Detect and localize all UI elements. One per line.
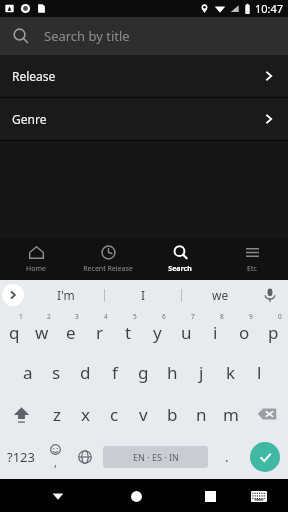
button[interactable]: Recents (197, 483, 223, 509)
staticText: 2 (47, 312, 51, 321)
button[interactable]: d (71, 351, 100, 393)
button[interactable]: 6 (143, 309, 172, 351)
button[interactable]: h (158, 351, 187, 393)
button[interactable]: x (71, 393, 100, 435)
staticText: 9 (249, 312, 253, 321)
staticText: r (96, 321, 104, 344)
staticText: ?123 (7, 448, 35, 466)
staticText: k (226, 361, 236, 384)
staticText: Release (12, 68, 262, 84)
staticText: z (53, 403, 61, 426)
staticText: p (268, 321, 279, 344)
staticText: 6 (162, 312, 166, 321)
staticText: f (112, 361, 118, 384)
staticText: j (199, 361, 204, 384)
button[interactable]: Search (0, 17, 288, 55)
staticText: Search by title (44, 27, 130, 45)
button[interactable]: Home (0, 238, 72, 280)
button[interactable]: Backspace (245, 393, 288, 435)
button[interactable]: 1 (0, 309, 28, 351)
button[interactable]: g (129, 351, 158, 393)
staticText: u (181, 321, 192, 344)
staticText: a (23, 361, 33, 384)
staticText: d (80, 361, 91, 384)
staticText: Home (26, 264, 46, 274)
staticText: m (223, 403, 239, 426)
staticText: 0 (278, 312, 282, 321)
button[interactable]: b (158, 393, 187, 435)
staticText: , (54, 455, 57, 470)
button[interactable]: j (187, 351, 216, 393)
staticText: I (141, 287, 146, 303)
staticText: o (239, 321, 250, 344)
staticText: w (35, 321, 49, 344)
staticText: 4 (104, 312, 108, 321)
button[interactable]: Emoji (41, 435, 70, 479)
staticText: x (81, 403, 90, 426)
button[interactable]: Home (123, 483, 149, 509)
button[interactable]: 4 (85, 309, 114, 351)
staticText: 10:47 (255, 1, 284, 16)
button[interactable]: I'm (28, 287, 104, 303)
button[interactable]: f (100, 351, 129, 393)
staticText: 3 (75, 312, 79, 321)
button[interactable]: k (216, 351, 245, 393)
staticText: e (66, 321, 76, 344)
staticText: . (225, 448, 229, 466)
button[interactable]: s (42, 351, 71, 393)
button[interactable]: . (212, 435, 241, 479)
staticText: i (213, 321, 218, 344)
button[interactable]: 9 (230, 309, 259, 351)
staticText: EN · ES · IN (133, 451, 179, 463)
button[interactable]: ?123 (0, 435, 41, 479)
staticText: v (139, 403, 148, 426)
button[interactable]: Back (45, 483, 71, 509)
button[interactable]: a (13, 351, 42, 393)
staticText: Genre (12, 111, 262, 127)
button[interactable]: More suggestions (2, 284, 24, 306)
staticText: I'm (57, 287, 75, 303)
staticText: Search (168, 264, 192, 274)
button[interactable]: 7 (172, 309, 201, 351)
button[interactable]: I (105, 287, 181, 303)
button[interactable]: v (129, 393, 158, 435)
button[interactable]: 3 (56, 309, 85, 351)
staticText: Recent Release (83, 264, 133, 274)
staticText: b (167, 403, 178, 426)
button[interactable]: Release (0, 55, 288, 97)
button[interactable]: c (100, 393, 129, 435)
staticText: y (153, 321, 162, 344)
button[interactable]: n (187, 393, 216, 435)
button[interactable]: Recent Release (72, 238, 144, 280)
staticText: Etc (247, 264, 257, 274)
button[interactable]: Search (144, 238, 216, 280)
staticText: h (167, 361, 178, 384)
staticText: t (125, 321, 132, 344)
staticText: 7 (191, 312, 195, 321)
staticText: s (52, 361, 61, 384)
button[interactable]: 8 (201, 309, 230, 351)
staticText: we (212, 287, 229, 303)
button[interactable]: l (245, 351, 274, 393)
button[interactable]: Switch keyboard (246, 483, 272, 509)
button[interactable]: 5 (114, 309, 143, 351)
button[interactable]: 2 (28, 309, 56, 351)
button[interactable]: z (42, 393, 71, 435)
button[interactable]: Shift (0, 393, 42, 435)
button[interactable]: Etc (216, 238, 288, 280)
button[interactable]: Done (250, 442, 280, 472)
staticText: n (196, 403, 207, 426)
staticText: c (110, 403, 119, 426)
button[interactable]: m (216, 393, 245, 435)
button[interactable]: Genre (0, 98, 288, 140)
button[interactable]: EN · ES · IN (103, 446, 208, 468)
staticText: g (138, 361, 149, 384)
staticText: l (257, 361, 262, 384)
staticText: 8 (220, 312, 224, 321)
button[interactable]: Voice input (260, 285, 280, 305)
button[interactable]: we (182, 287, 258, 303)
button[interactable]: Change language (70, 435, 99, 479)
staticText: 5 (133, 312, 137, 321)
button[interactable]: 0 (259, 309, 288, 351)
staticText: 1 (19, 312, 23, 321)
